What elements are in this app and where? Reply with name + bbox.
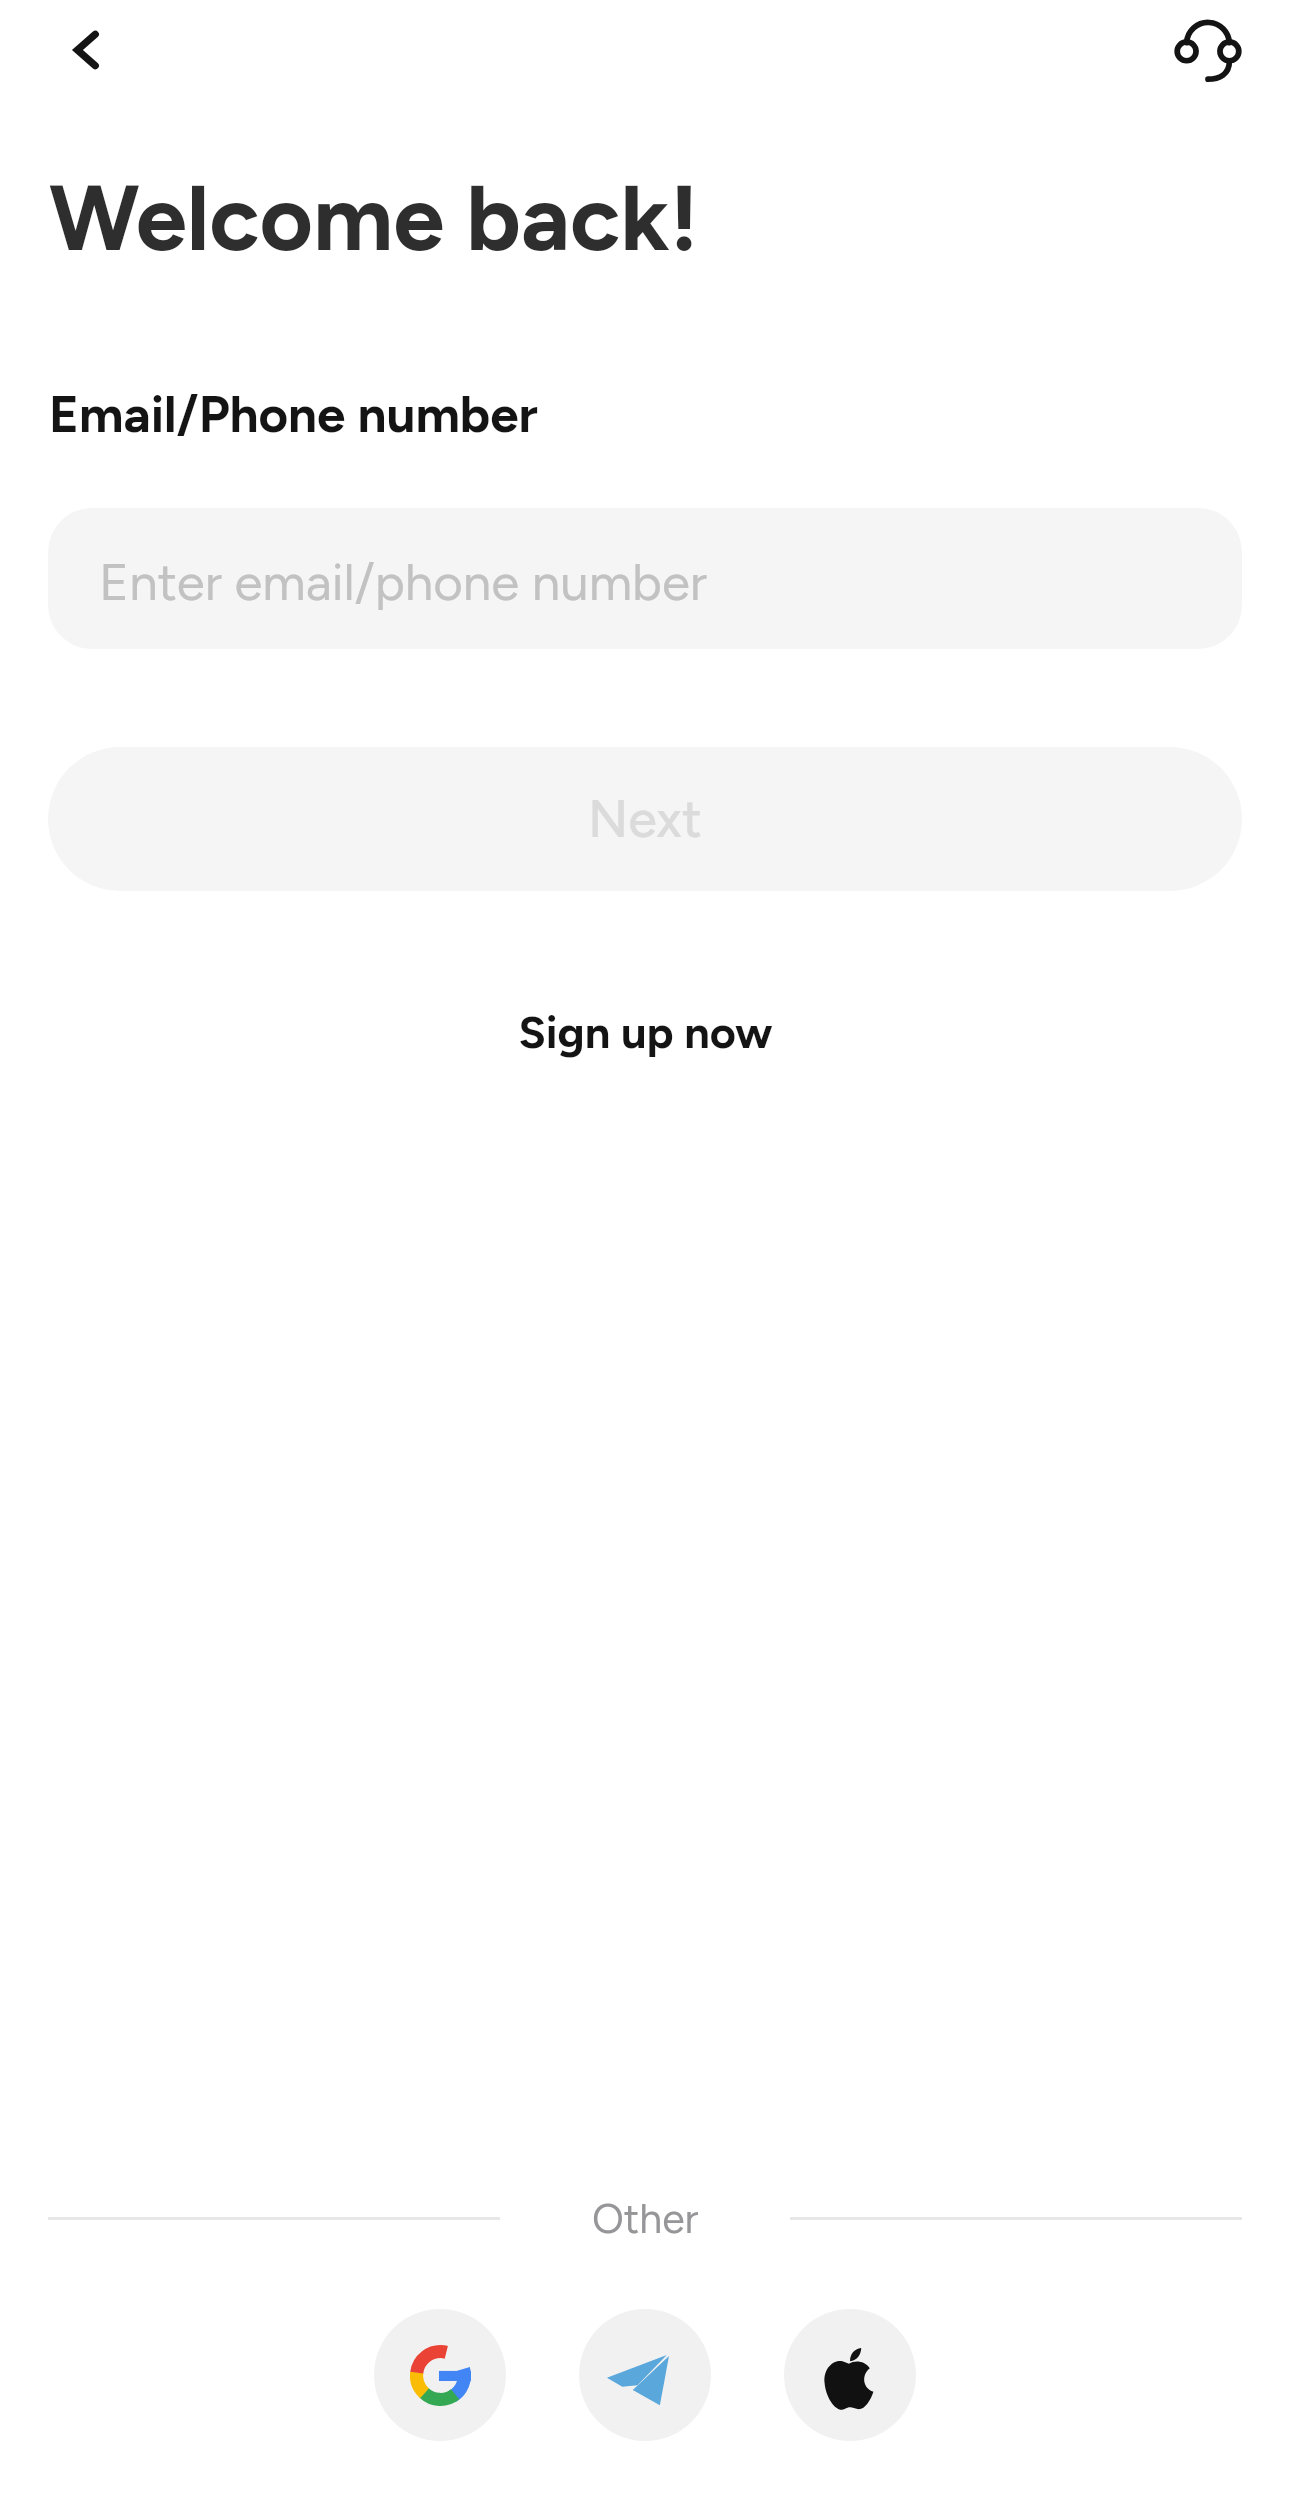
staticText: Sign up now [518,1005,773,1059]
button[interactable]: Back [31,18,159,82]
staticText: Enter email/phone number [99,552,707,613]
button[interactable]: Sign in with Google [374,2309,506,2441]
button[interactable]: Customer support [1146,4,1270,98]
staticText: Next [588,788,702,850]
staticText: Other [592,2194,699,2243]
button[interactable]: Sign up now [494,985,797,1079]
button[interactable]: Sign in with Apple [784,2309,916,2441]
staticText: Welcome back! [49,163,699,273]
button[interactable]: Enter email/phone number [48,508,1242,649]
staticText: Email/Phone number [49,384,538,445]
button[interactable]: Sign in with Telegram [579,2309,711,2441]
